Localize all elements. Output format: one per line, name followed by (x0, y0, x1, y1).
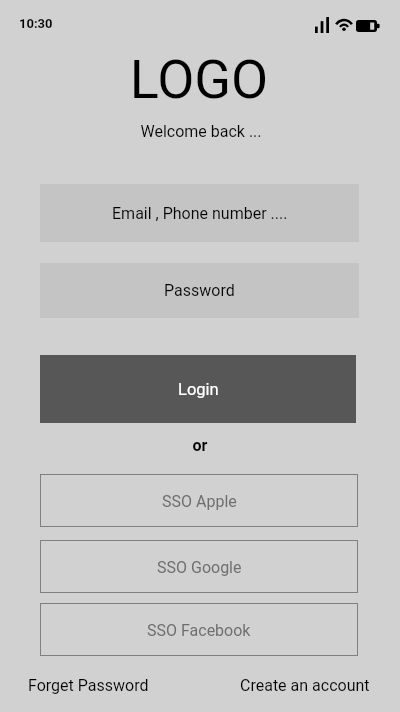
staticText: LOGO (0, 48, 399, 111)
staticText: SSO Facebook (147, 621, 251, 640)
button[interactable]: Password (40, 263, 359, 318)
staticText: Welcome back ... (1, 122, 400, 141)
staticText: SSO Apple (162, 492, 237, 511)
button[interactable]: Email , Phone number .... (40, 184, 359, 242)
button[interactable]: SSO Facebook (40, 603, 358, 656)
button[interactable]: SSO Apple (40, 474, 358, 527)
staticText: 10:30 (19, 16, 53, 31)
button[interactable]: Create an account (240, 670, 370, 701)
button[interactable]: SSO Google (40, 540, 358, 593)
button[interactable]: Login (40, 355, 356, 423)
staticText: Login (178, 380, 219, 399)
staticText: Create an account (240, 676, 370, 695)
staticText: Email , Phone number .... (112, 204, 288, 223)
staticText: Forget Password (28, 676, 149, 695)
button[interactable]: Forget Password (28, 670, 149, 701)
staticText: or (0, 436, 400, 455)
staticText: Password (164, 281, 235, 300)
other: Battery (356, 20, 380, 32)
other: Wi-Fi (335, 18, 353, 33)
staticText: SSO Google (157, 558, 242, 577)
other: Cellular signal (315, 17, 329, 33)
